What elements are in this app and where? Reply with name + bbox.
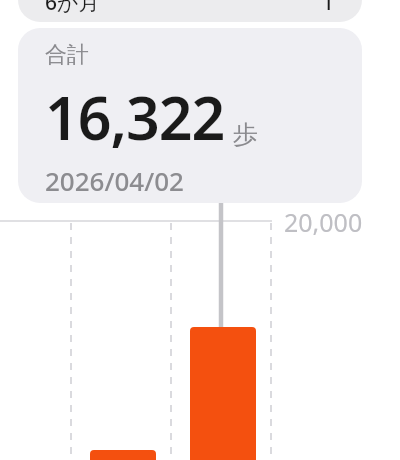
staticText: 1: [322, 0, 335, 17]
staticText: 歩: [233, 119, 258, 150]
staticText: 20,000: [284, 205, 363, 239]
staticText: 16,322: [45, 77, 225, 157]
button[interactable]: 合計: [18, 28, 362, 203]
staticText: 6か月: [45, 0, 100, 17]
staticText: 合計: [45, 41, 89, 69]
button[interactable]: 6か月: [18, 0, 362, 22]
staticText: 2026/04/02: [45, 163, 184, 198]
